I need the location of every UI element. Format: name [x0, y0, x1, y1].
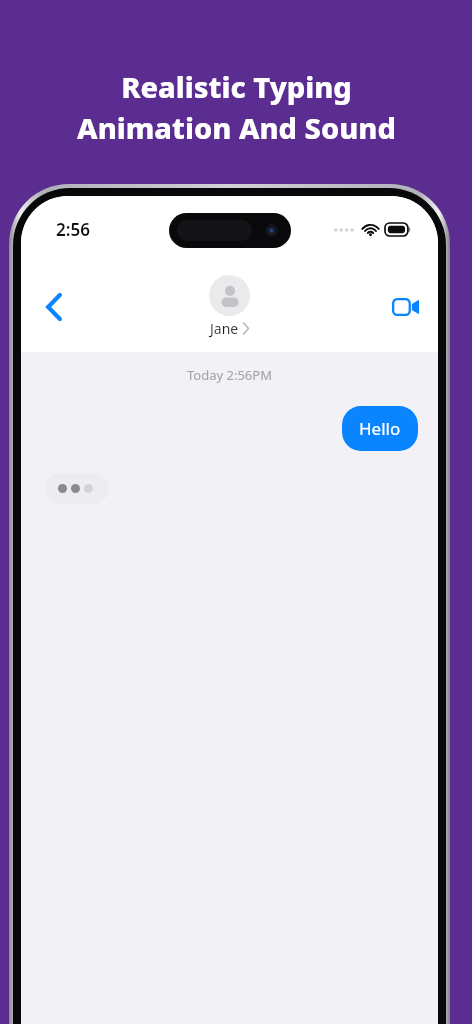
staticText: Jane: [210, 319, 239, 338]
staticText: 2:56: [56, 218, 90, 241]
button[interactable]: Jane is typing: [45, 473, 109, 504]
button[interactable]: Video call: [382, 284, 428, 330]
staticText: Hello: [359, 417, 401, 440]
staticText: Animation And Sound: [77, 108, 396, 147]
staticText: Realistic Typing: [121, 67, 352, 106]
button[interactable]: Jane: [209, 275, 250, 338]
button[interactable]: Back: [31, 284, 77, 330]
button[interactable]: Hello: [342, 406, 418, 451]
staticText: Today 2:56PM: [187, 366, 272, 384]
